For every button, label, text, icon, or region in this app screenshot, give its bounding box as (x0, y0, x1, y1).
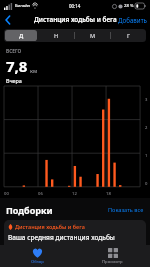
staticText: Н (54, 32, 59, 40)
button[interactable]: Н (40, 30, 73, 41)
button[interactable]: Показать все (108, 206, 144, 214)
staticText: Дистанция ходьбы и бега (34, 15, 117, 24)
staticText: 7,8 (6, 56, 28, 76)
staticText: 00:14 (69, 3, 81, 9)
staticText: 3 (145, 97, 148, 103)
button[interactable]: Г (112, 30, 145, 41)
staticText: ВСЕГО (6, 48, 22, 55)
staticText: Подборки (6, 204, 53, 216)
button[interactable]: Добавить (118, 16, 147, 24)
staticText: 28 % (124, 3, 134, 9)
staticText: 06 (38, 191, 43, 197)
staticText: 12 (72, 191, 77, 197)
button[interactable]: Д (5, 30, 37, 41)
button[interactable]: Просмотр (75, 245, 150, 267)
button[interactable]: Back (0, 12, 16, 27)
staticText: Г (127, 32, 130, 40)
staticText: км (30, 67, 38, 74)
staticText: Билайн (15, 3, 31, 9)
staticText: 18 (106, 191, 111, 197)
staticText: Ваша средняя дистанция ходьбы (8, 233, 115, 242)
button[interactable]: Обзор (0, 245, 75, 267)
staticText: Добавить (118, 16, 147, 24)
staticText: 00 (4, 191, 9, 197)
staticText: 2 (145, 125, 148, 131)
button[interactable]: М (76, 30, 109, 41)
button[interactable]: Дистанция ходьбы и бега (4, 220, 146, 245)
staticText: Вчера (6, 77, 22, 84)
staticText: Дистанция ходьбы и бега (15, 223, 85, 230)
staticText: Показать все (108, 206, 144, 214)
staticText: Обзор (31, 259, 44, 265)
staticText: Просмотр (102, 259, 123, 265)
staticText: Д (19, 32, 24, 40)
staticText: 0 (145, 181, 148, 187)
staticText: 1 (145, 153, 148, 159)
staticText: М (90, 32, 96, 40)
